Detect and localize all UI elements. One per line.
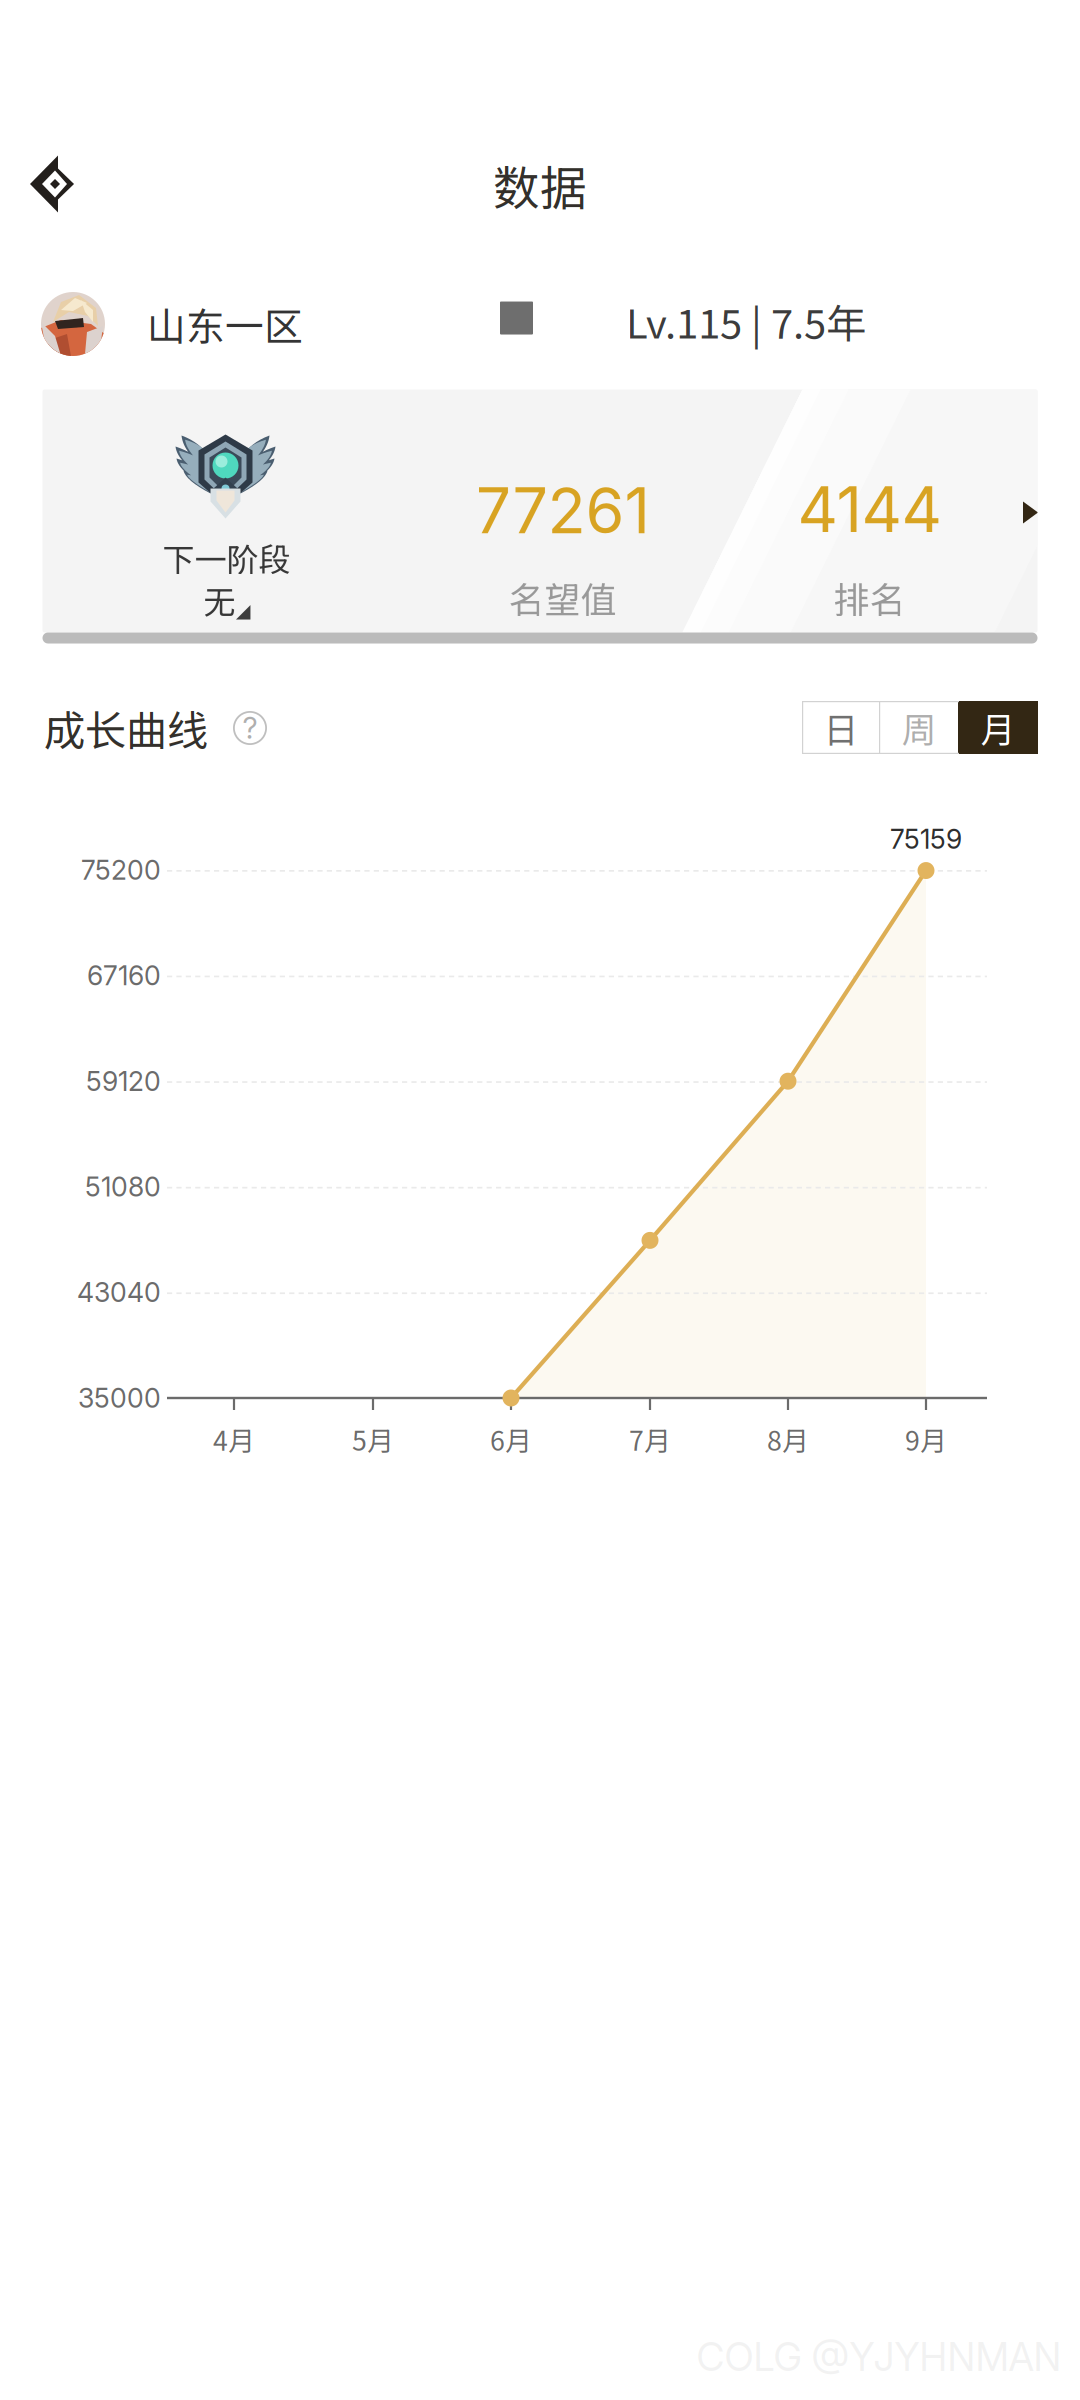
staticText: Lv.115 | 7.5年 (626, 292, 866, 350)
staticText: 77261 (475, 473, 649, 548)
staticText: 75159 (890, 823, 962, 855)
staticText: 山东一区 (147, 296, 303, 352)
staticText: 日 (823, 702, 858, 753)
button[interactable]: Back (0, 129, 107, 239)
staticText: 数据 (493, 151, 587, 219)
staticText: 排名 (833, 571, 905, 623)
staticText: 5月 (352, 1420, 394, 1458)
staticText: 无 (203, 577, 235, 623)
staticText: 6月 (490, 1420, 532, 1458)
staticText: 名望值 (508, 571, 616, 623)
staticText: 59120 (86, 1065, 161, 1097)
button[interactable]: 日 (802, 701, 880, 754)
staticText: 67160 (87, 959, 161, 992)
staticText: ? (242, 710, 257, 746)
staticText: 51080 (85, 1171, 161, 1203)
staticText: 8月 (767, 1420, 809, 1458)
staticText: 35000 (78, 1382, 161, 1414)
staticText: 9月 (905, 1420, 947, 1458)
staticText: 周 (901, 702, 936, 753)
staticText: 下一阶段 (162, 534, 290, 581)
staticText: 成长曲线 (44, 698, 208, 758)
staticText: 75200 (81, 854, 161, 886)
staticText: 4月 (213, 1420, 255, 1458)
button[interactable]: 月 (958, 701, 1038, 754)
staticText: COLG @YJYHNMAN (696, 2334, 1061, 2380)
button[interactable]: 周 (880, 701, 958, 754)
button[interactable]: Lv.115 | 7.5年 (497, 286, 897, 356)
staticText: 4144 (797, 472, 941, 547)
staticText: 月 (980, 702, 1015, 753)
staticText: 7月 (629, 1420, 671, 1458)
staticText: 43040 (77, 1276, 161, 1309)
button[interactable]: 山东一区 (41, 289, 341, 359)
